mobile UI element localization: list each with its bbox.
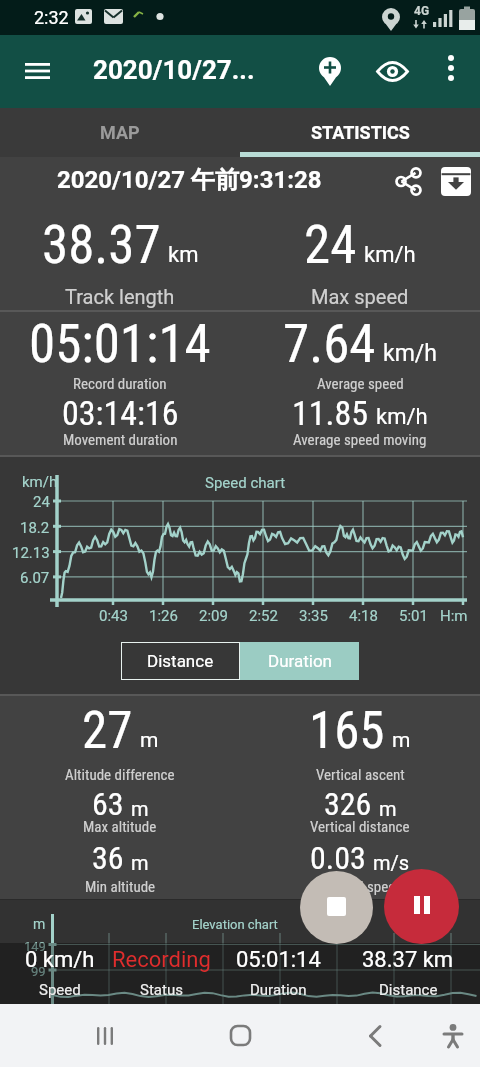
- staticText: 2:52: [249, 607, 278, 625]
- button[interactable]: MAP: [0, 108, 240, 157]
- staticText: STATISTICS: [311, 122, 410, 143]
- staticText: 11.85: [292, 393, 369, 433]
- staticText: 27: [82, 701, 133, 761]
- button[interactable]: [428, 1005, 478, 1066]
- staticText: Record duration: [73, 375, 167, 393]
- staticText: km/h: [22, 473, 58, 491]
- staticText: m: [379, 797, 397, 820]
- staticText: km/h: [383, 340, 437, 367]
- button[interactable]: [210, 1005, 270, 1066]
- staticText: Track length: [65, 285, 175, 308]
- staticText: 3:35: [299, 607, 328, 625]
- staticText: 2020/10/27...: [93, 55, 255, 85]
- staticText: 2:32: [34, 7, 69, 28]
- button[interactable]: [386, 159, 430, 203]
- staticText: Speed: [39, 981, 81, 999]
- staticText: 03:14:16: [62, 393, 179, 433]
- staticText: Max altitude: [83, 818, 157, 836]
- staticText: 326: [324, 785, 372, 823]
- staticText: 24: [33, 493, 50, 511]
- button[interactable]: [368, 47, 416, 95]
- staticText: m/s: [373, 851, 410, 874]
- staticText: km/h: [364, 242, 416, 268]
- staticText: 63: [92, 785, 124, 823]
- staticText: 0:43: [99, 607, 128, 625]
- staticText: 38.37: [42, 214, 161, 276]
- staticText: m: [392, 728, 411, 753]
- staticText: Status: [140, 981, 183, 999]
- button[interactable]: STATISTICS: [240, 108, 480, 157]
- button[interactable]: Duration: [240, 642, 359, 680]
- staticText: 4G: [414, 4, 430, 18]
- staticText: 0.03: [310, 839, 366, 877]
- staticText: Duration: [268, 651, 332, 671]
- staticText: Movement duration: [63, 431, 178, 449]
- button[interactable]: [384, 869, 459, 944]
- staticText: Speed chart: [205, 474, 286, 492]
- staticText: 05:01:14: [236, 947, 321, 973]
- button[interactable]: [434, 159, 478, 203]
- staticText: m: [131, 797, 149, 820]
- staticText: 2:09: [199, 607, 228, 625]
- staticText: 0 km/h: [25, 947, 95, 973]
- staticText: km/h: [376, 404, 428, 430]
- staticText: Altitude difference: [65, 766, 175, 784]
- staticText: m: [140, 728, 159, 753]
- staticText: Distance: [147, 651, 214, 671]
- staticText: 12.13: [12, 544, 50, 562]
- staticText: 6.07: [20, 569, 50, 587]
- staticText: 165: [309, 701, 385, 761]
- button[interactable]: [13, 47, 61, 95]
- staticText: 05:01:14: [29, 313, 211, 375]
- staticText: 36: [92, 839, 124, 877]
- staticText: 7.64: [283, 313, 376, 375]
- staticText: 149: [24, 939, 46, 954]
- staticText: Average speed: [317, 375, 404, 393]
- staticText: Recording: [112, 947, 211, 973]
- staticText: 4:18: [349, 607, 378, 625]
- staticText: km: [168, 242, 199, 268]
- staticText: 99: [31, 964, 46, 979]
- staticText: Vertical distance: [310, 818, 410, 836]
- staticText: Duration: [250, 981, 307, 999]
- staticText: Vertical ascent: [316, 766, 405, 784]
- staticText: MAP: [100, 122, 140, 143]
- staticText: Vertical speed: [318, 878, 403, 896]
- staticText: m: [33, 916, 46, 932]
- button[interactable]: [300, 871, 373, 944]
- button[interactable]: [345, 1005, 405, 1066]
- staticText: 1:26: [149, 607, 178, 625]
- staticText: Elevation chart: [192, 917, 278, 932]
- staticText: 18.2: [20, 519, 50, 537]
- staticText: 24: [304, 214, 357, 276]
- staticText: 2020/10/27 午前9:31:28: [57, 165, 322, 195]
- staticText: H:m: [440, 607, 468, 625]
- staticText: 5:01: [399, 607, 428, 625]
- button[interactable]: [306, 47, 354, 95]
- staticText: Distance: [379, 981, 438, 999]
- button[interactable]: [430, 47, 472, 89]
- staticText: Max speed: [311, 285, 409, 308]
- staticText: Min altitude: [85, 878, 156, 896]
- staticText: 38.37 km: [362, 947, 454, 973]
- staticText: m: [131, 851, 149, 874]
- button[interactable]: Distance: [121, 642, 240, 680]
- staticText: Average speed moving: [293, 431, 427, 449]
- button[interactable]: [75, 1005, 135, 1066]
